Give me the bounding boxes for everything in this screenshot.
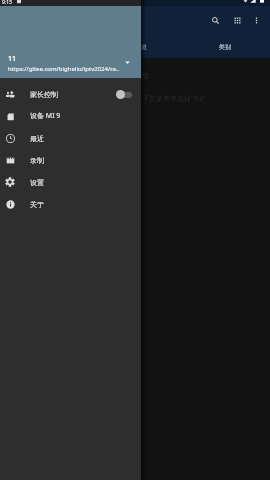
button[interactable]: 所有频道 xyxy=(90,34,180,58)
staticText: 长按某个频道，然后在上下文菜单中选择"%s" xyxy=(65,94,206,104)
staticText: 设置 xyxy=(30,178,44,187)
button[interactable]: Switch account xyxy=(123,58,132,67)
staticText: 类别 xyxy=(219,43,231,51)
button[interactable]: 收藏 xyxy=(0,34,90,58)
staticText: 设备 MI 9 xyxy=(30,111,61,121)
button[interactable]: 关于 xyxy=(0,193,141,215)
button[interactable]: More options xyxy=(248,12,265,29)
button[interactable]: Search xyxy=(204,9,226,31)
staticText: 11 xyxy=(8,54,17,64)
button[interactable]: 类别 xyxy=(180,34,270,58)
button[interactable]: 家长控制 xyxy=(0,83,141,105)
staticText: 9:13 xyxy=(2,0,12,5)
staticText: 家长控制 xyxy=(30,90,58,99)
staticText: 录制 xyxy=(30,156,44,165)
button[interactable]: Grid view xyxy=(226,9,248,31)
button[interactable]: 最近 xyxy=(0,127,141,149)
staticText: 没有频道 xyxy=(121,71,149,80)
staticText: 最近 xyxy=(30,134,44,143)
button[interactable]: 录制 xyxy=(0,149,141,171)
button[interactable]: 设备 MI 9 xyxy=(0,105,141,127)
staticText: https://gitee.com/bighello/iptv2024/ra.. xyxy=(8,65,120,73)
staticText: 所有频道 xyxy=(123,43,147,51)
button[interactable]: 设置 xyxy=(0,171,141,193)
staticText: 关于 xyxy=(30,200,44,209)
